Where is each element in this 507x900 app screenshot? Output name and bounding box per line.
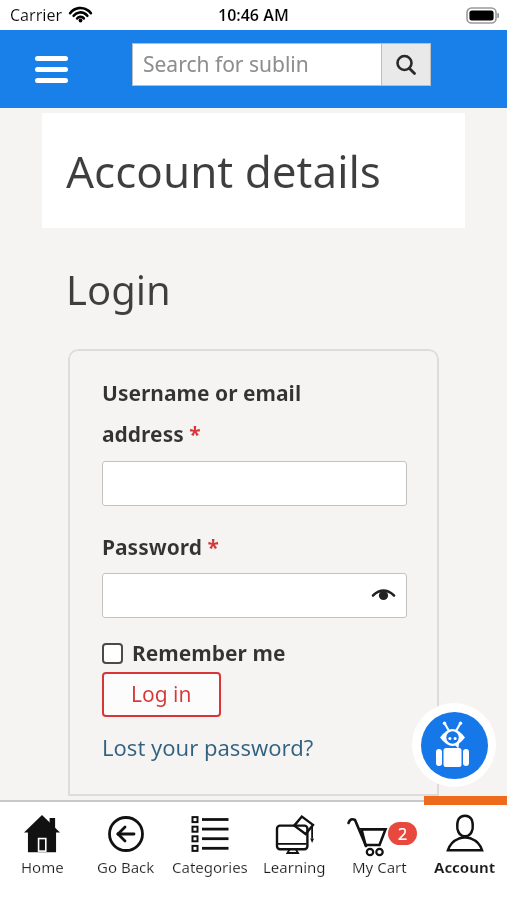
button[interactable]: Account	[422, 805, 507, 900]
staticText: Login	[66, 262, 171, 316]
button[interactable]: 2	[337, 805, 422, 900]
staticText: Learning	[263, 857, 326, 877]
button[interactable]: Categories	[168, 805, 252, 900]
staticText: 10:46 AM	[218, 4, 289, 26]
button[interactable]: Learning	[252, 805, 337, 900]
staticText: My Cart	[352, 857, 407, 877]
staticText: Account details	[66, 141, 381, 201]
button[interactable]	[412, 703, 496, 787]
button[interactable]: Search for sublin	[132, 43, 381, 86]
button[interactable]: Remember me	[102, 639, 286, 668]
button[interactable]: Log in	[102, 672, 221, 717]
button[interactable]: Lost your password?	[102, 732, 314, 762]
staticText: Username or email address *	[102, 379, 302, 448]
staticText: Go Back	[97, 857, 155, 877]
staticText: Carrier	[10, 4, 63, 26]
staticText: Search for sublin	[143, 50, 309, 79]
staticText: Home	[21, 857, 64, 877]
staticText: Password *	[102, 533, 219, 562]
button[interactable]: Home	[0, 805, 84, 900]
staticText: 2	[398, 823, 408, 845]
staticText: Categories	[172, 857, 248, 877]
button[interactable]: Go Back	[84, 805, 168, 900]
button[interactable]	[381, 43, 431, 86]
staticText: Account	[434, 857, 496, 877]
button[interactable]	[35, 56, 68, 83]
staticText: Log in	[131, 680, 192, 709]
staticText: Remember me	[132, 639, 286, 668]
